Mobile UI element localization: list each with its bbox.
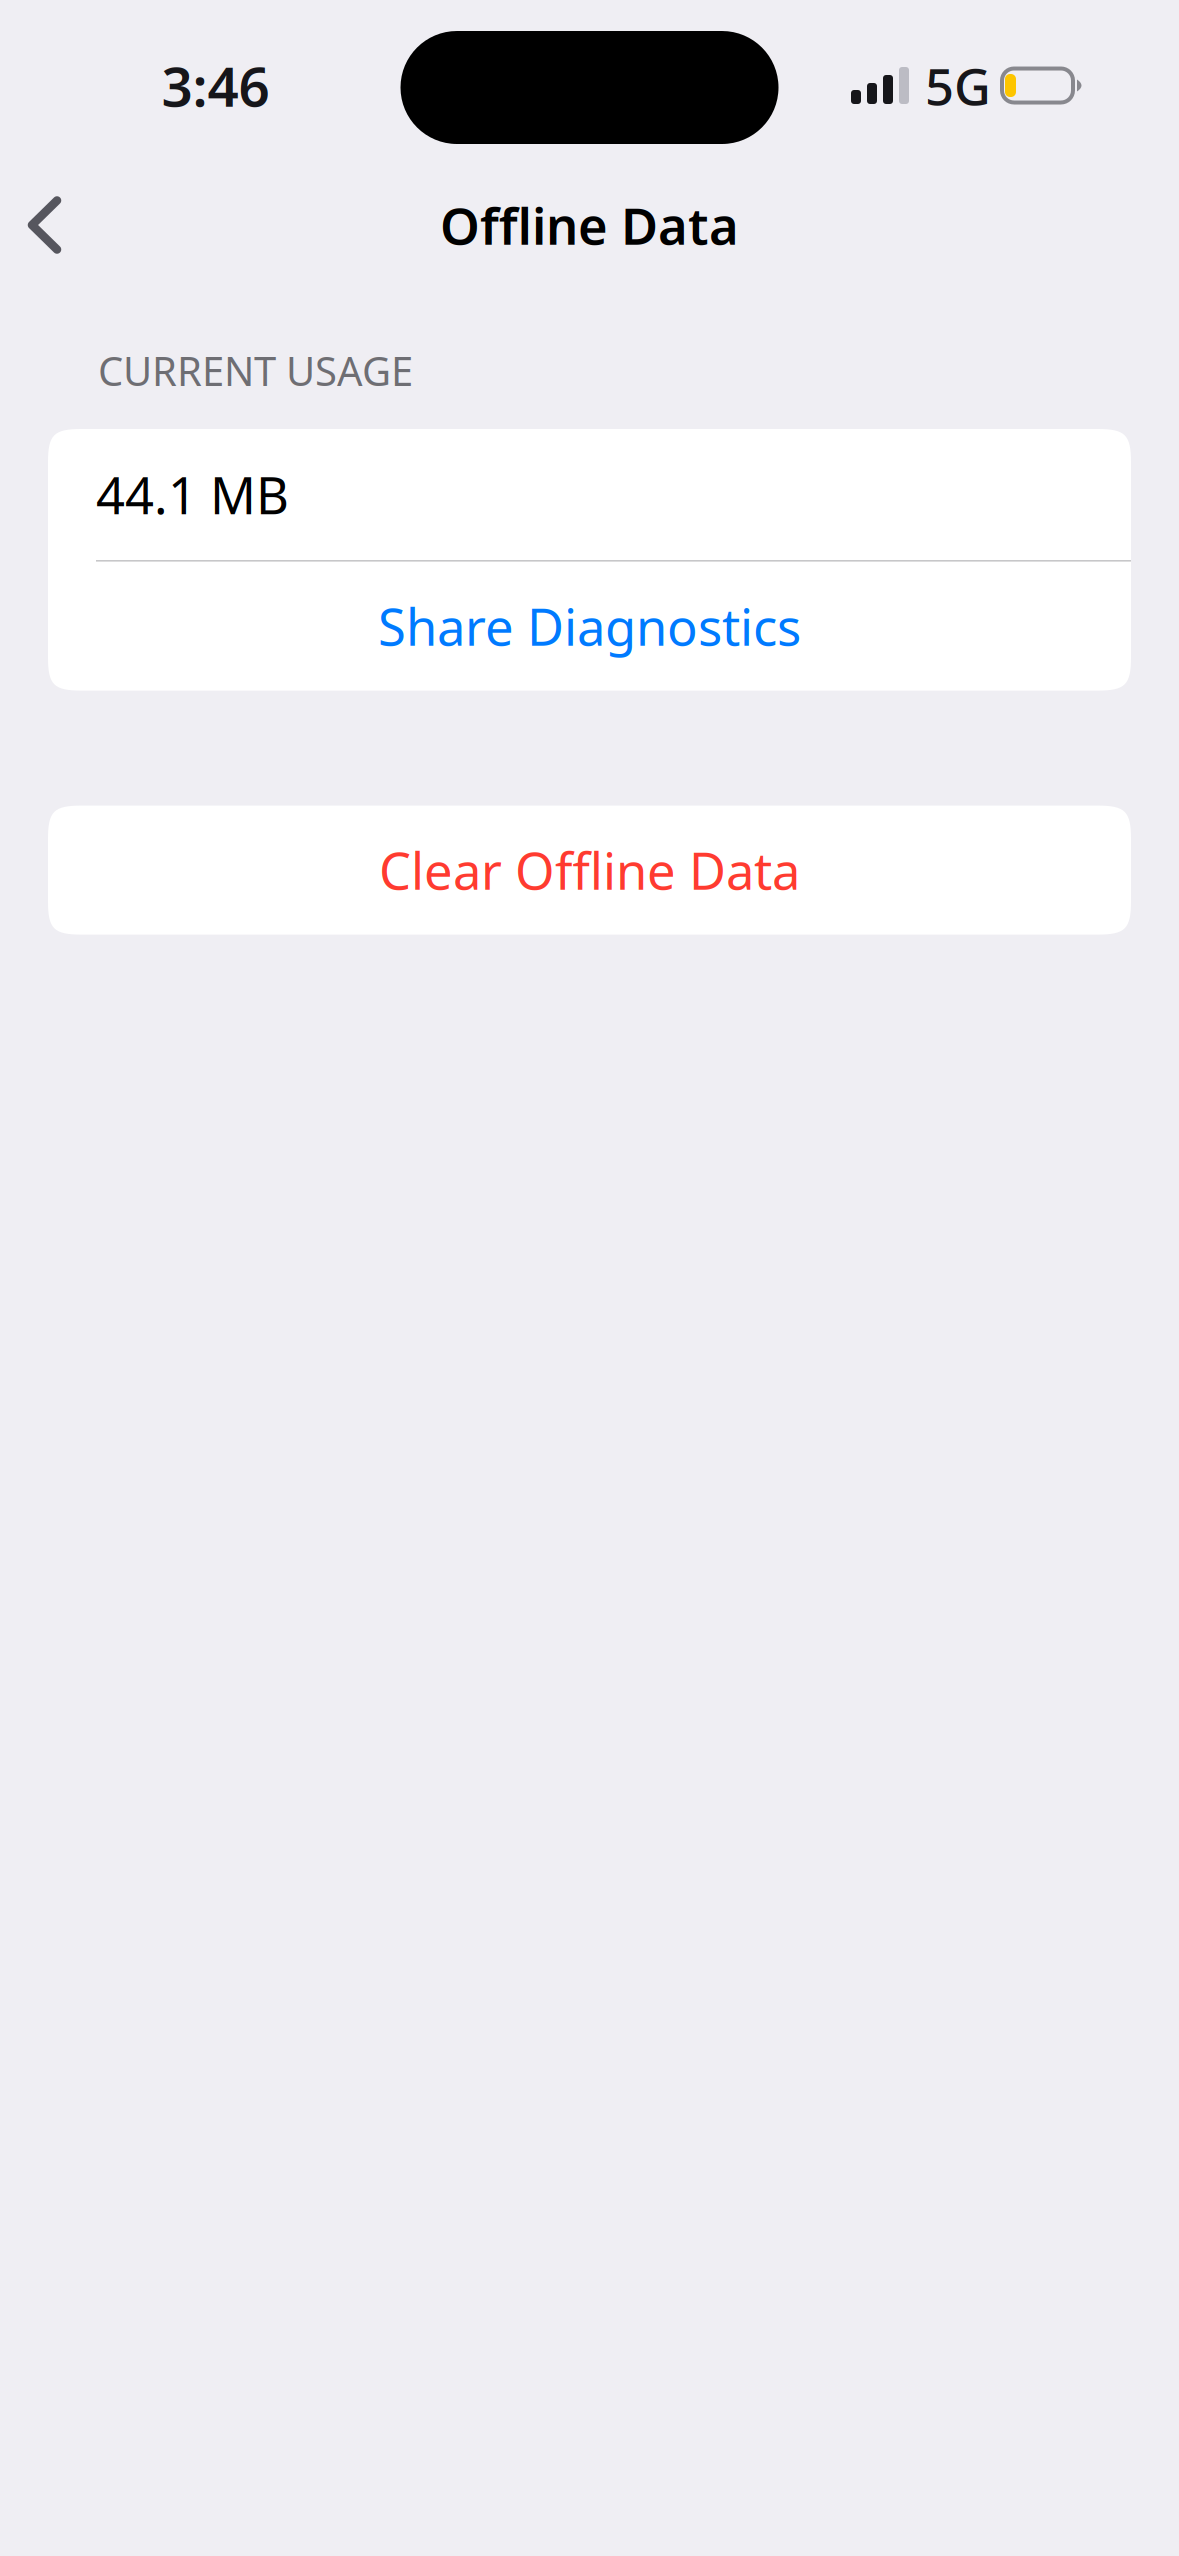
button[interactable]: Share Diagnostics bbox=[48, 562, 1131, 691]
staticText: Share Diagnostics bbox=[378, 592, 801, 660]
button[interactable]: Clear Offline Data bbox=[48, 806, 1131, 935]
staticText: Offline Data bbox=[440, 191, 739, 259]
button[interactable]: Back bbox=[0, 169, 97, 281]
staticText: CURRENT USAGE bbox=[98, 344, 413, 397]
staticText: 5G bbox=[925, 52, 991, 119]
staticText: Clear Offline Data bbox=[379, 836, 800, 904]
staticText: 3:46 bbox=[161, 49, 269, 122]
staticText: 44.1 MB bbox=[96, 461, 289, 528]
